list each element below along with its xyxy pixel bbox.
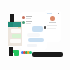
button[interactable]: Messages [20,12,47,50]
button[interactable]: Profile card [44,10,61,42]
button[interactable]: Action bar [32,52,63,57]
